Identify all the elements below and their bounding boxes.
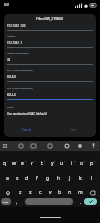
button[interactable]: Keyboard switcher — [0, 141, 9, 150]
staticText: i — [71, 160, 73, 167]
button[interactable]: v — [45, 187, 55, 198]
staticText: b — [58, 189, 62, 196]
button[interactable]: n — [65, 187, 75, 198]
staticText: Save — [70, 128, 77, 132]
button[interactable]: Shift — [0, 187, 15, 198]
button[interactable]: Save — [50, 125, 96, 134]
staticText: g — [46, 175, 50, 182]
staticText: q — [3, 160, 7, 167]
button[interactable]: q — [0, 158, 9, 169]
staticText: DNS 1 (unless overridden) — [7, 69, 33, 72]
staticText: 2 — [16, 159, 18, 162]
button[interactable]: h — [53, 173, 64, 184]
button[interactable]: Enter — [84, 198, 97, 205]
staticText: a — [6, 175, 9, 182]
staticText: p — [90, 160, 94, 167]
button[interactable]: l — [86, 173, 97, 184]
staticText: 8 — [74, 159, 76, 162]
button[interactable]: w — [9, 158, 18, 169]
staticText: . — [80, 199, 82, 206]
staticText: j — [69, 175, 71, 182]
staticText: l — [91, 175, 93, 182]
button[interactable]: g — [42, 173, 53, 184]
button[interactable]: Clipboard — [45, 141, 54, 150]
button[interactable]: Period — [77, 197, 85, 208]
staticText: 5 — [44, 159, 46, 162]
button[interactable]: Emoji — [16, 141, 25, 150]
button[interactable]: a — [2, 173, 12, 184]
staticText: s — [16, 175, 19, 182]
staticText: x — [29, 189, 32, 196]
staticText: 4 — [34, 159, 36, 162]
staticText: h — [57, 175, 61, 182]
button[interactable]: Backspace — [85, 187, 100, 198]
staticText: 192.168.1.120 — [7, 24, 26, 28]
button[interactable]: Stickers — [75, 141, 84, 150]
button[interactable]: Cancel — [4, 125, 50, 134]
button[interactable]: o — [77, 158, 87, 169]
staticText: 1 — [7, 159, 9, 162]
staticText: k — [79, 175, 82, 182]
staticText: d — [25, 175, 29, 182]
staticText: 192.168.1.1 — [7, 41, 23, 45]
button[interactable]: p — [87, 158, 97, 169]
button[interactable]: i — [67, 158, 77, 169]
staticText: Use randomized MAC (default) — [7, 112, 47, 116]
button[interactable]: Settings — [62, 141, 71, 150]
staticText: Privacy — [7, 106, 14, 109]
staticText: 0 — [94, 159, 96, 162]
button[interactable]: Comma — [13, 197, 21, 208]
staticText: 3 — [25, 159, 27, 162]
staticText: 6 — [54, 159, 56, 162]
staticText: c — [39, 189, 42, 196]
staticText: Gateway — [7, 35, 16, 38]
staticText: 7 — [64, 159, 66, 162]
button[interactable]: c — [35, 187, 45, 198]
staticText: w — [12, 160, 16, 167]
staticText: v — [49, 189, 52, 196]
staticText: DNS 2 (unless overridden) — [7, 87, 33, 90]
staticText: f — [36, 175, 38, 182]
staticText: t — [41, 160, 43, 167]
staticText: 9:41 — [4, 3, 10, 7]
button[interactable]: d — [22, 173, 32, 184]
button[interactable]: b — [55, 187, 65, 198]
staticText: e — [21, 160, 24, 167]
staticText: 9 — [84, 159, 86, 162]
button[interactable]: k — [75, 173, 86, 184]
staticText: ?123 — [3, 200, 9, 203]
staticText: m — [78, 189, 83, 196]
button[interactable]: t — [37, 158, 47, 169]
button[interactable]: Voice input — [89, 141, 98, 150]
button[interactable]: z — [15, 187, 25, 198]
staticText: , — [16, 199, 18, 206]
staticText: FiberGW_2T0B60 — [36, 16, 64, 21]
button[interactable]: j — [64, 173, 75, 184]
button[interactable]: m — [75, 187, 85, 198]
staticText: Network prefix length — [7, 52, 29, 55]
button[interactable]: f — [32, 173, 42, 184]
button[interactable]: r — [27, 158, 37, 169]
staticText: 8.8.4.4 — [7, 93, 16, 97]
staticText: u — [60, 160, 64, 167]
staticText: Cancel — [22, 128, 32, 132]
button[interactable]: ?123 — [1, 198, 11, 205]
staticText: 24 — [7, 58, 11, 62]
staticText: o — [80, 160, 84, 167]
staticText: n — [68, 189, 72, 196]
button[interactable]: e — [18, 158, 27, 169]
staticText: r — [31, 160, 34, 167]
button[interactable]: Space — [25, 198, 73, 205]
button[interactable]: s — [12, 173, 22, 184]
button[interactable]: GIF — [29, 141, 38, 150]
button[interactable]: x — [25, 187, 35, 198]
staticText: y — [51, 160, 54, 167]
button[interactable]: u — [57, 158, 67, 169]
button[interactable]: y — [47, 158, 57, 169]
staticText: z — [19, 189, 22, 196]
staticText: 8.8.8.8 — [7, 75, 16, 79]
